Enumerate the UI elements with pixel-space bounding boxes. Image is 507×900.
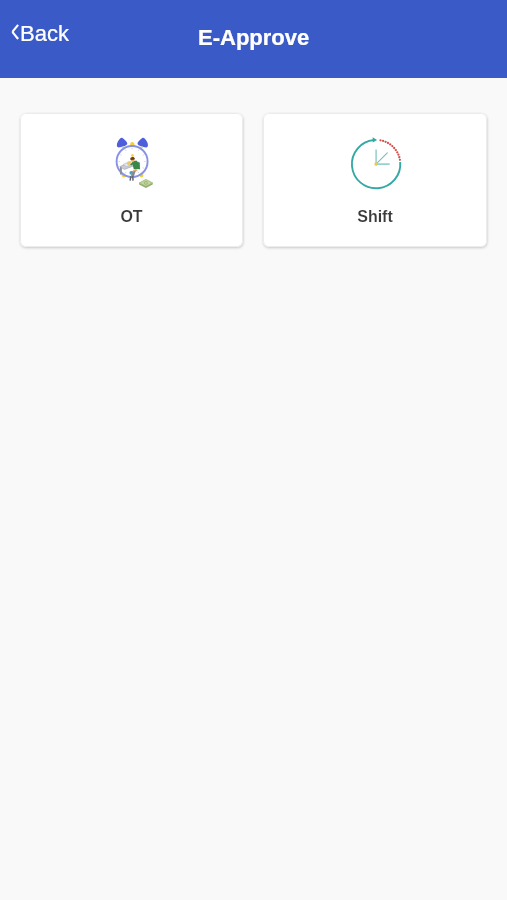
staticText: OT [120,208,143,226]
staticText: Back [20,21,69,46]
button[interactable]: Back [0,0,83,57]
button[interactable]: Shift [263,113,487,247]
button[interactable]: OT [20,113,243,247]
staticText: E-Approve [198,25,310,50]
staticText: Shift [357,208,393,226]
